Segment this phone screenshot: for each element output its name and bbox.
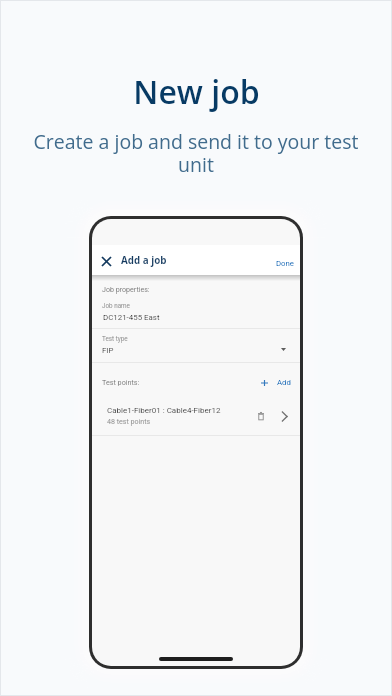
staticText: Job properties: (102, 285, 150, 293)
staticText: Add (277, 378, 291, 387)
staticText: Test points: (102, 378, 140, 386)
staticText: Job name (102, 302, 130, 309)
staticText: FIP (102, 346, 114, 355)
staticText: Done (276, 259, 295, 268)
staticText: DC121-455 East (103, 313, 160, 322)
button[interactable]: Close (97, 252, 116, 271)
staticText: Add a job (121, 254, 167, 267)
staticText: Cable1-Fiber01 : Cable4-Fiber12 (107, 406, 221, 415)
button[interactable] (92, 400, 300, 430)
button[interactable]: Done (271, 252, 300, 275)
staticText: Test type (102, 335, 128, 342)
button[interactable]: Open test point (275, 407, 293, 425)
button[interactable]: Add a job (121, 254, 167, 267)
staticText: Create a job and send it to your test un… (28, 128, 364, 178)
button[interactable]: Add (257, 372, 295, 393)
staticText: New job (133, 70, 260, 114)
button[interactable]: Delete test point (252, 407, 270, 425)
button[interactable]: Select test type (273, 339, 293, 359)
staticText: 48 test points (107, 417, 151, 425)
